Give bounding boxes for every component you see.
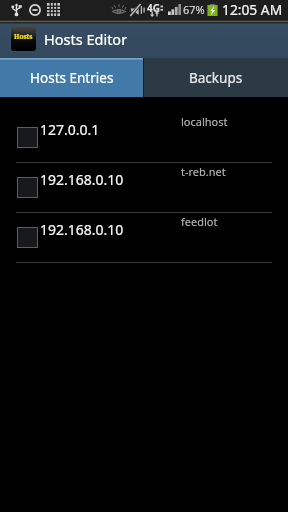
staticText: 192.168.0.10 bbox=[40, 220, 124, 239]
button[interactable]: t-reb.net bbox=[0, 163, 288, 212]
button[interactable]: Backups bbox=[144, 58, 288, 97]
staticText: 127.0.0.1 bbox=[40, 120, 100, 139]
staticText: t-reb.net bbox=[181, 164, 226, 179]
staticText: 4G bbox=[147, 1, 160, 15]
button[interactable]: localhost bbox=[0, 113, 288, 162]
staticText: localhost bbox=[181, 114, 228, 129]
button[interactable]: Select 192.168.0.10 bbox=[17, 177, 38, 198]
staticText: Hosts Editor bbox=[44, 29, 128, 49]
button[interactable]: Select 127.0.0.1 bbox=[17, 127, 38, 148]
staticText: 12:05 AM bbox=[222, 0, 283, 19]
button[interactable]: feedlot bbox=[0, 213, 288, 262]
button[interactable]: Select 192.168.0.10 bbox=[17, 227, 38, 248]
staticText: feedlot bbox=[181, 214, 218, 229]
button[interactable]: Hosts Entries bbox=[0, 58, 143, 97]
staticText: 192.168.0.10 bbox=[40, 170, 124, 189]
staticText: Hosts Entries bbox=[30, 69, 114, 87]
staticText: 67% bbox=[183, 2, 205, 17]
staticText: Backups bbox=[189, 69, 243, 87]
staticText: Hosts bbox=[14, 32, 33, 41]
